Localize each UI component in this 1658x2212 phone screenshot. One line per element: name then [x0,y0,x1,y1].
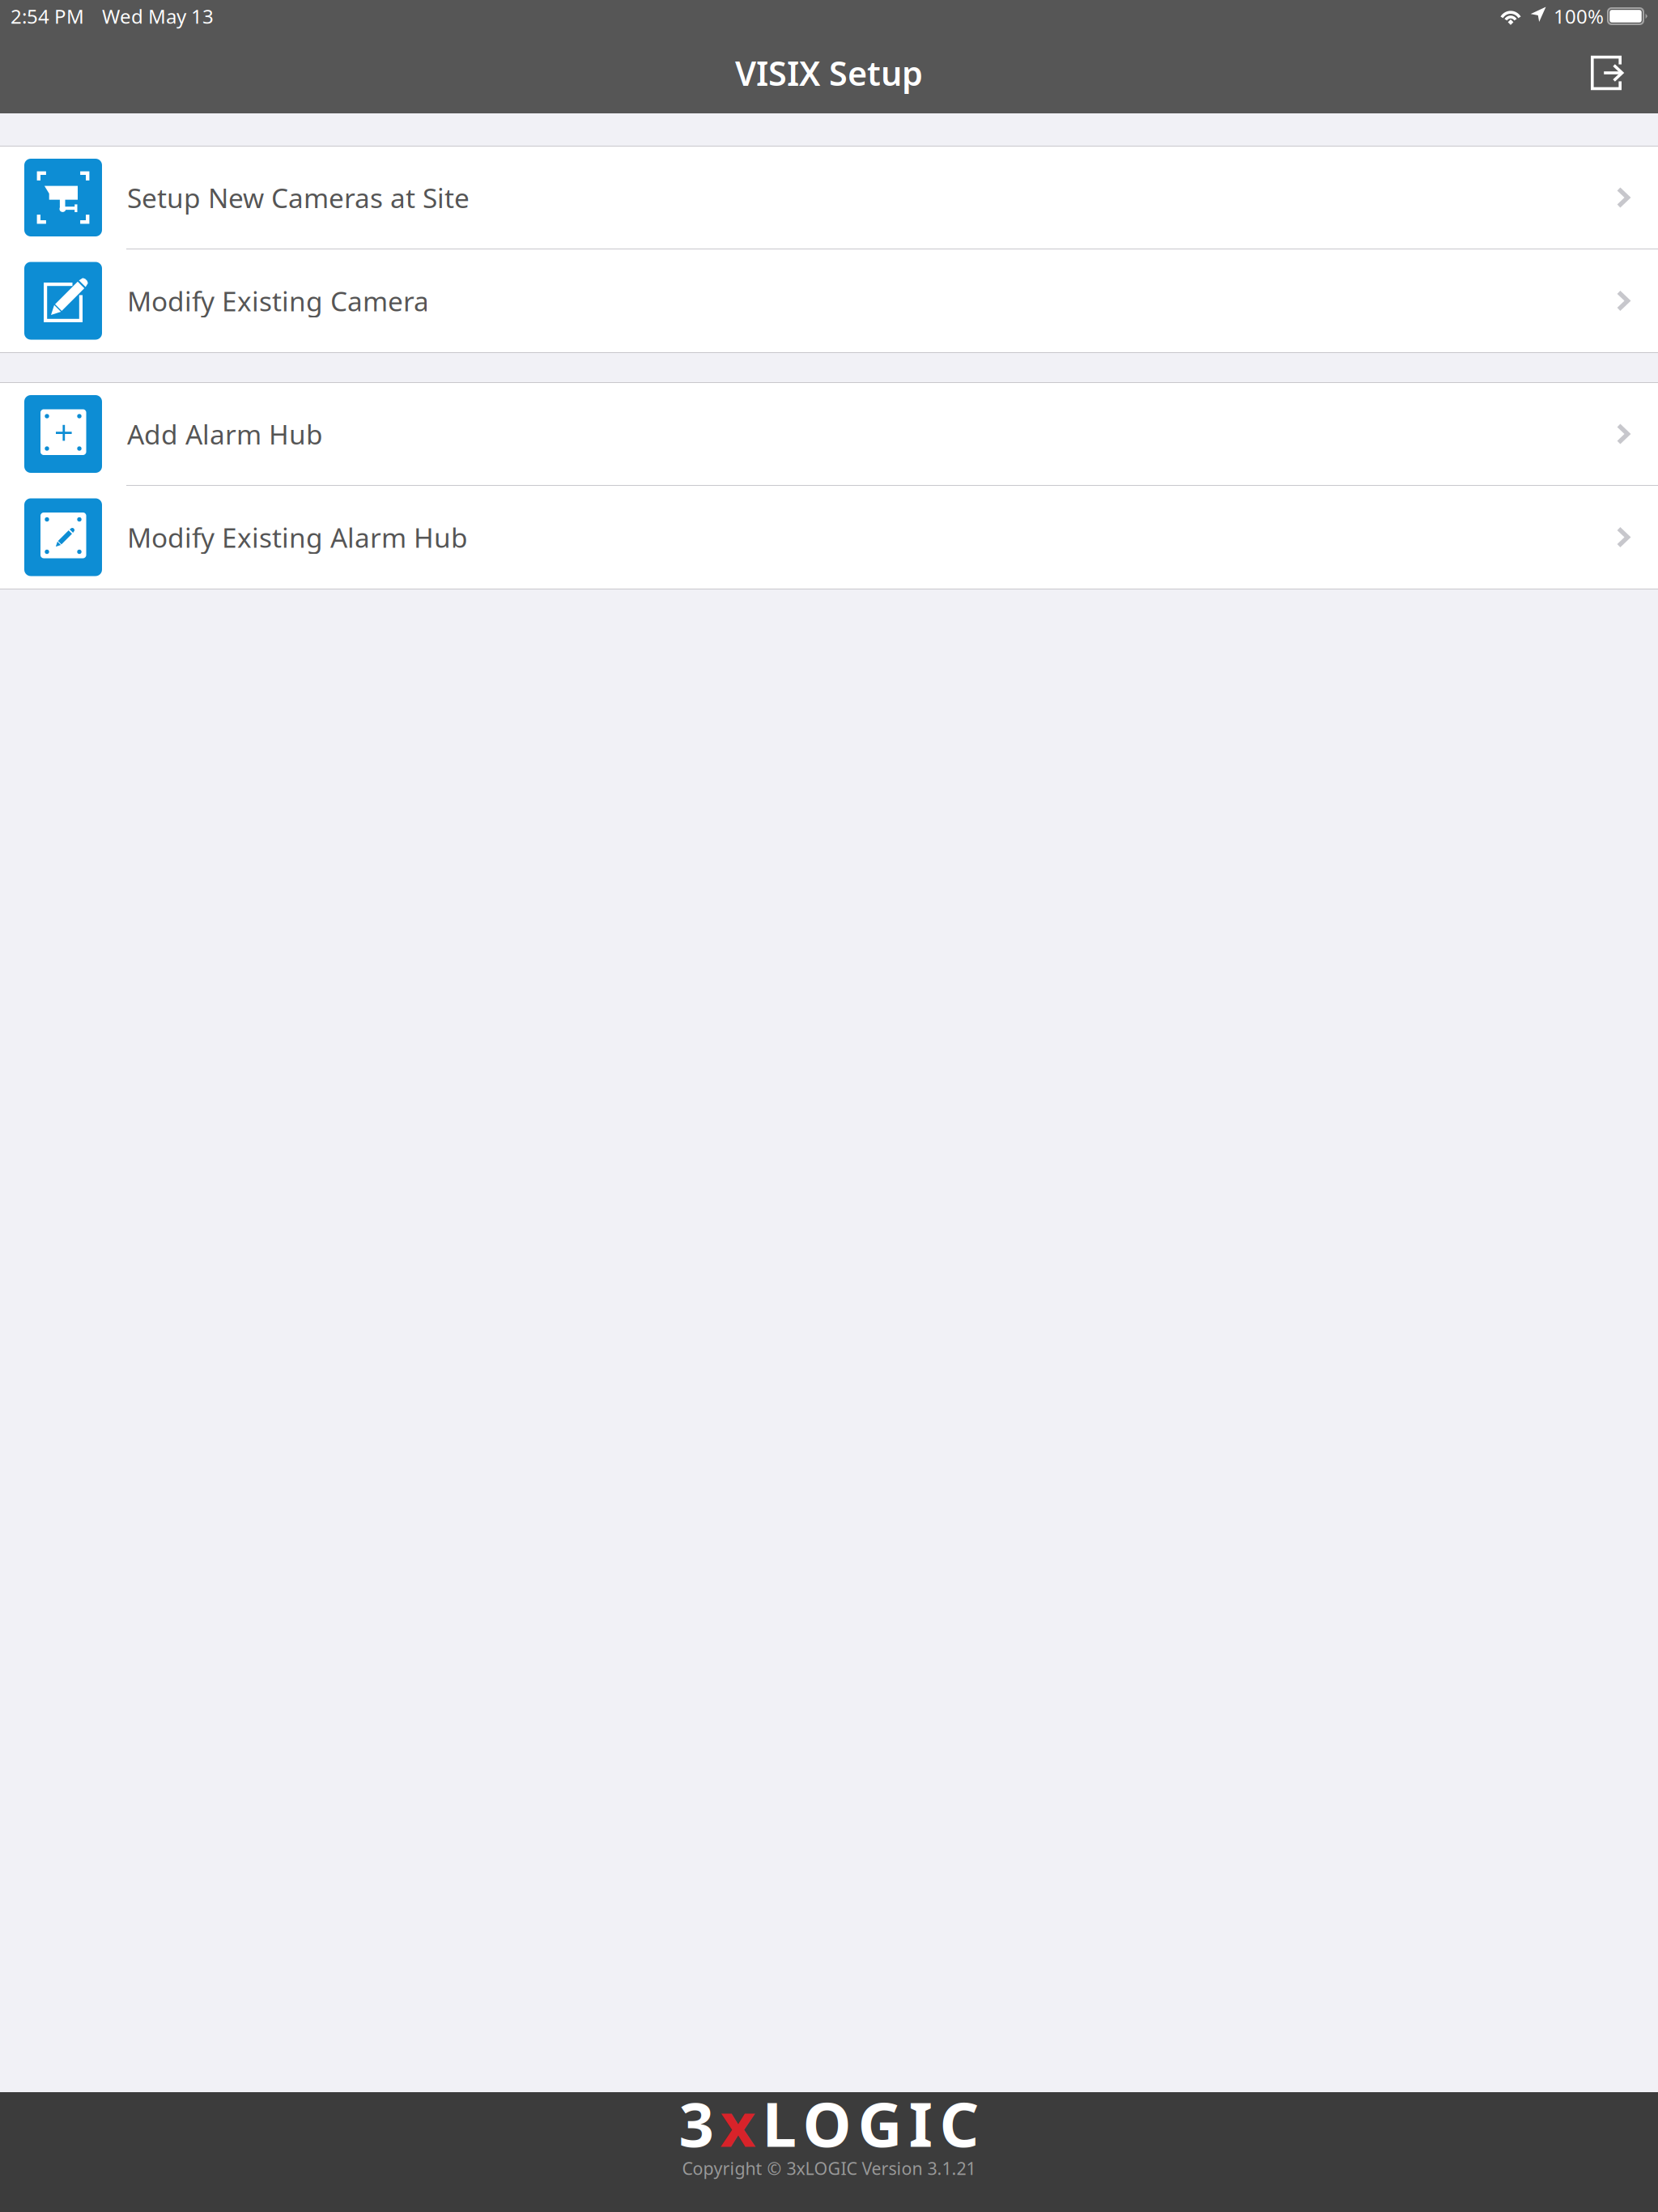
staticText: VISIX Setup [735,51,923,95]
staticText: Add Alarm Hub [127,416,323,452]
staticText: I [909,2082,933,2164]
staticText: Setup New Cameras at Site [127,180,470,216]
staticText: O [803,2082,851,2164]
staticText: L [762,2082,796,2164]
staticText: Modify Existing Camera [127,283,429,319]
staticText: Modify Existing Alarm Hub [127,519,468,555]
staticText: 3 [679,2082,714,2164]
staticText: 100% [1554,3,1604,29]
staticText: Wed May 13 [102,3,214,29]
button[interactable]: Modify Existing Camera [0,249,1658,352]
button[interactable]: Setup New Cameras at Site [0,147,1658,249]
button[interactable]: Log out [1576,41,1638,105]
button[interactable]: Add Alarm Hub [0,383,1658,486]
staticText: G [858,2082,902,2164]
staticText: x [720,2082,756,2164]
staticText: 2:54 PM [11,3,84,29]
button[interactable]: Modify Existing Alarm Hub [0,486,1658,589]
staticText: Copyright © 3xLOGIC Version 3.1.21 [682,2157,976,2180]
staticText: C [940,2082,979,2164]
